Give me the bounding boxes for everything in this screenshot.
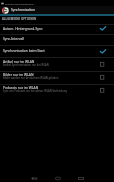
button[interactable]: Artikel nur im WLAN (0, 58, 114, 71)
button[interactable]: Podcasts nur im WLAN (0, 85, 114, 98)
staticText: Szenario wird gespeichert… (5, 2, 36, 5)
staticText: Synchronisation (11, 8, 36, 12)
staticText: ALLGEMEINE OPTIONEN (2, 17, 37, 21)
staticText: Artikel nur im WLAN (3, 59, 35, 63)
staticText: Artikel-Synchronisation nur bei WLAN (3, 63, 49, 67)
button[interactable]: Bilder nur im WLAN (0, 72, 114, 84)
button[interactable]: Back (22, 168, 46, 182)
button[interactable]: Recent apps (69, 168, 93, 182)
staticText: Podcasts nur im WLAN (3, 85, 39, 89)
staticText: Autom. Hintergrund-Sync (3, 26, 43, 30)
button[interactable]: App icon (2, 7, 9, 14)
staticText: Bilder nur im WLAN (3, 72, 34, 76)
staticText: Bilder werden nur bei aktivem WLAN gelad… (3, 76, 59, 80)
staticText: Synchronisation beim Start (3, 48, 45, 52)
button[interactable]: Autom. Hintergrund-Sync (0, 25, 114, 34)
button[interactable]: Synchronisation beim Start (0, 46, 114, 57)
staticText: Sync von Podcasts nur bei aktiver WLAN-V… (3, 89, 67, 93)
button[interactable]: Sync-Intervall (0, 35, 114, 45)
staticText: Sync-Intervall (3, 36, 24, 40)
button[interactable]: Home (46, 168, 70, 182)
